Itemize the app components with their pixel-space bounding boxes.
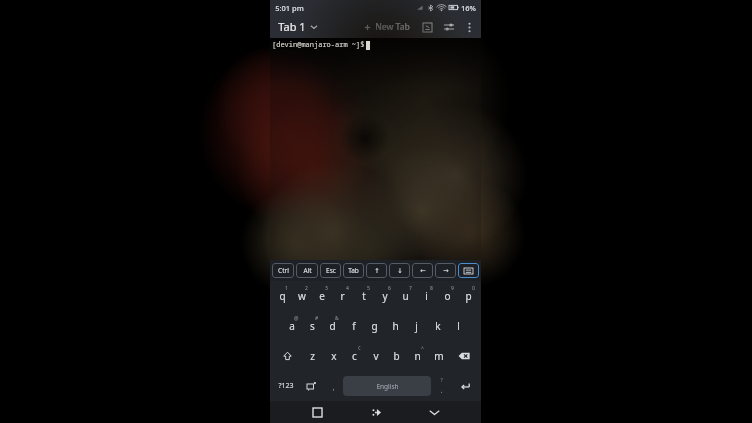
button[interactable]: g [364,311,385,341]
button[interactable]: x [323,341,344,371]
staticText: o [444,289,451,303]
staticText: e [319,289,325,303]
staticText: u [402,289,409,303]
staticText: t [362,289,366,303]
button[interactable]: b [386,341,407,371]
button[interactable]: 5 [353,281,374,311]
staticText: Esc [326,266,336,275]
button[interactable]: → [435,263,456,278]
button[interactable]: j [406,311,427,341]
button[interactable]: 6 [374,281,395,311]
staticText: New Tab [375,21,410,33]
staticText: c [352,349,357,363]
button[interactable]: 4 [332,281,353,311]
button[interactable]: ? [431,371,451,401]
button[interactable]: New Tab [363,21,410,33]
staticText: 3 [325,285,328,292]
staticText: . [440,384,443,395]
staticText: 16% [461,3,476,13]
button[interactable]: Toggle keyboard [458,263,479,278]
staticText: 1 [285,285,288,292]
staticText: ← [420,267,426,275]
button[interactable]: 2 [292,281,312,311]
button[interactable]: Backspace [449,341,479,371]
button[interactable]: ← [412,263,433,278]
staticText: ^ [421,345,424,352]
staticText: Tab 1 [278,19,306,34]
button[interactable]: Esc [320,263,341,278]
button[interactable]: Enter [451,371,479,401]
button[interactable]: & [322,311,343,341]
button[interactable]: k [427,311,448,341]
button[interactable]: 3 [312,281,332,311]
staticText: f [352,319,356,333]
staticText: h [392,319,399,333]
staticText: k [435,319,441,333]
button[interactable]: More options [462,20,476,34]
staticText: g [371,319,378,333]
button[interactable]: English [343,376,431,396]
button[interactable]: Tab [343,263,364,278]
button[interactable]: ↓ [389,263,410,278]
button[interactable]: f [343,311,364,341]
button[interactable]: m [428,341,449,371]
staticText: v [373,349,379,363]
staticText: English [376,382,399,391]
staticText: 8 [430,285,433,292]
staticText: b [393,349,400,363]
button[interactable]: Recent apps [306,401,328,423]
button[interactable]: Settings [442,20,456,34]
staticText: 6 [388,285,391,292]
staticText: 5:01 pm [275,3,304,13]
button[interactable]: Switch language [299,371,323,401]
staticText: m [434,349,444,363]
staticText: @ [294,315,299,322]
button[interactable]: Ctrl [272,263,294,278]
button[interactable]: l [448,311,469,341]
staticText: q [279,289,286,303]
staticText: p [465,289,472,303]
staticText: Alt [303,266,312,275]
button[interactable]: Home [365,401,387,423]
button[interactable]: ¢ [344,341,365,371]
button[interactable]: 9 [437,281,458,311]
button[interactable]: # [302,311,322,341]
button[interactable]: 0 [458,281,479,311]
staticText: l [457,319,460,333]
button[interactable]: 8 [416,281,437,311]
staticText: r [340,289,345,303]
button[interactable]: v [365,341,386,371]
button[interactable]: ^ [407,341,428,371]
button[interactable]: @ [282,311,302,341]
staticText: ¢ [358,345,361,352]
button[interactable]: 1 [272,281,292,311]
staticText: z [310,349,315,363]
staticText: y [382,289,388,303]
staticText: 4 [346,285,349,292]
button[interactable]: Tab 1 [278,19,322,34]
staticText: , [332,381,335,392]
staticText: ↑ [374,267,380,275]
button[interactable]: Keyboard toggle [420,20,434,34]
staticText: 0 [472,285,475,292]
staticText: 9 [451,285,454,292]
staticText: [devin@manjaro-arm ~]$ [272,40,365,50]
staticText: Tab [348,266,359,275]
staticText: j [415,319,418,333]
staticText: & [335,315,339,322]
staticText: 5 [367,285,370,292]
button[interactable]: ↑ [366,263,387,278]
button[interactable]: z [302,341,323,371]
button[interactable]: h [385,311,406,341]
button[interactable]: , [323,371,343,401]
staticText: w [298,289,306,303]
staticText: d [329,319,336,333]
staticText: # [315,315,319,322]
staticText: Ctrl [278,266,289,275]
button[interactable]: 7 [395,281,416,311]
button[interactable]: Shift [272,341,302,371]
button[interactable]: Alt [296,263,318,278]
button[interactable]: ?123 [272,371,299,401]
button[interactable]: Hide keyboard [423,401,445,423]
staticText: x [331,349,337,363]
